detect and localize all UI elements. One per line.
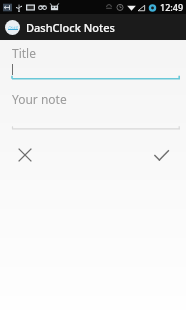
staticText: Your note [12, 91, 67, 107]
staticText: NOTES [8, 26, 18, 30]
button[interactable]: Your note [0, 91, 186, 130]
staticText: DashClock Notes [26, 20, 115, 35]
button[interactable]: Title [0, 45, 186, 80]
staticText: 12:49 [160, 1, 184, 13]
button[interactable]: Save [147, 141, 175, 169]
button[interactable]: Discard [11, 141, 39, 169]
staticText: Title [12, 45, 36, 61]
